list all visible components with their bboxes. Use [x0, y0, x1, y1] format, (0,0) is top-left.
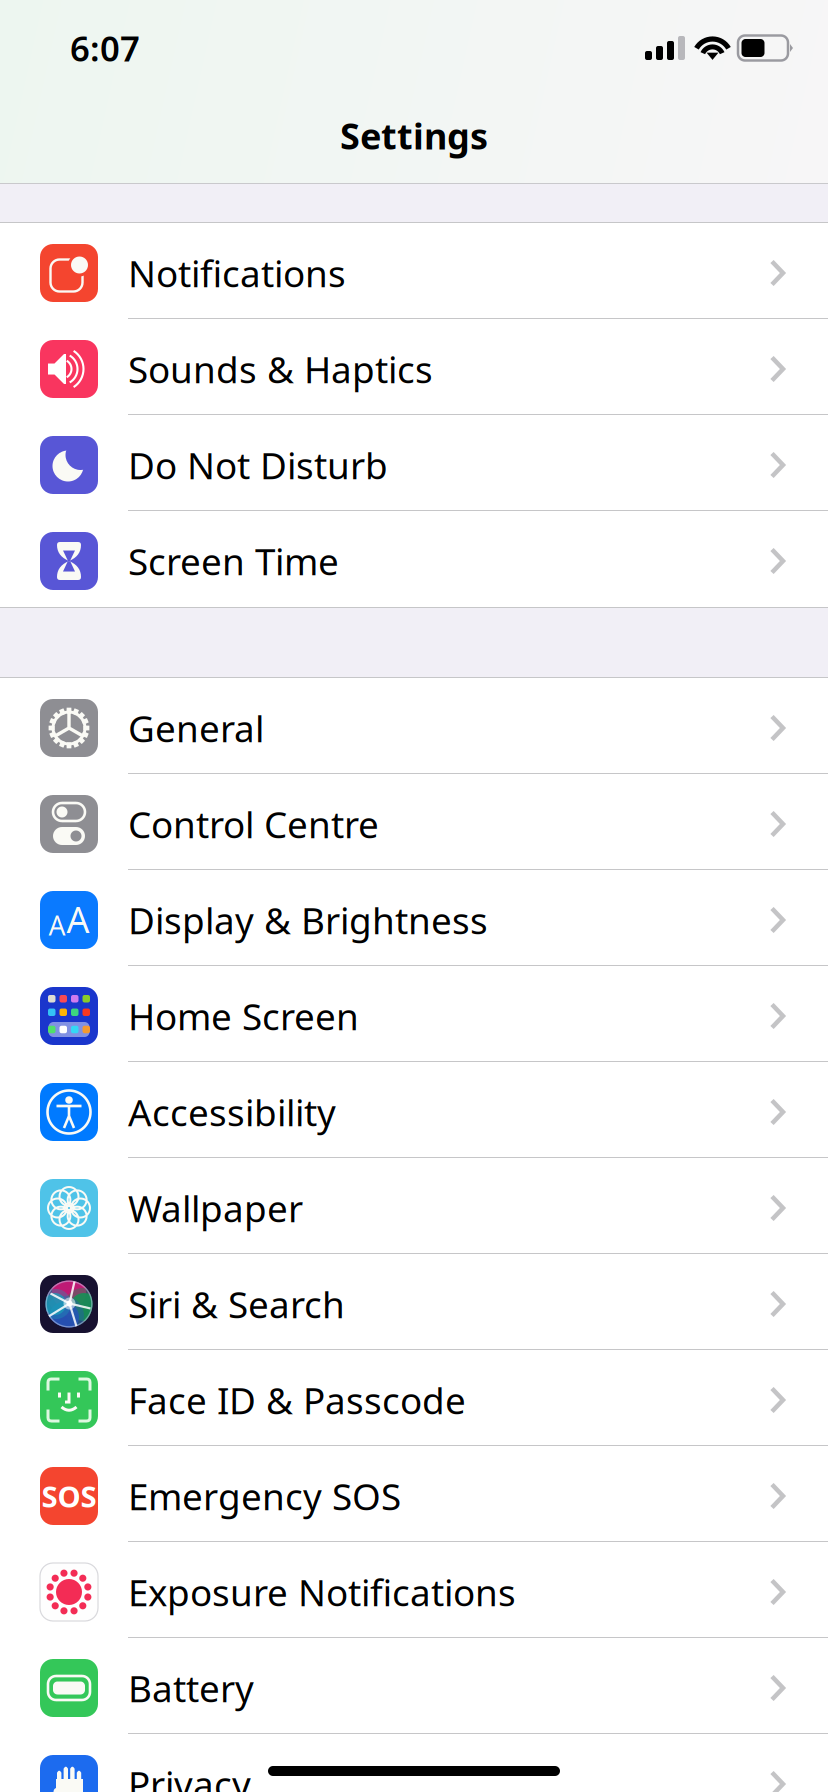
button[interactable]: General [0, 678, 828, 774]
staticText: Privacy [128, 1759, 251, 1792]
staticText: Emergency SOS [128, 1471, 401, 1521]
button[interactable]: Sounds & Haptics [0, 319, 828, 415]
button[interactable]: Battery [0, 1638, 828, 1734]
staticText: Accessibility [128, 1087, 336, 1137]
staticText: Sounds & Haptics [128, 344, 433, 394]
staticText: Display & Brightness [128, 895, 488, 945]
button[interactable]: Exposure Notifications [0, 1542, 828, 1638]
button[interactable]: Accessibility [0, 1062, 828, 1158]
button[interactable]: Face ID & Passcode [0, 1350, 828, 1446]
staticText: Siri & Search [128, 1279, 345, 1329]
staticText: Home Screen [128, 991, 359, 1041]
staticText: A [48, 907, 65, 943]
button[interactable]: Screen Time [0, 511, 828, 607]
staticText: A [66, 895, 89, 943]
button[interactable]: SOS [0, 1446, 828, 1542]
staticText: Control Centre [128, 799, 379, 849]
staticText: Do Not Disturb [128, 440, 388, 490]
staticText: Notifications [128, 248, 346, 298]
staticText: Exposure Notifications [128, 1567, 516, 1617]
button[interactable]: Home Screen [0, 966, 828, 1062]
button[interactable]: A [0, 870, 828, 966]
button[interactable]: Wallpaper [0, 1158, 828, 1254]
button[interactable]: Siri & Search [0, 1254, 828, 1350]
staticText: Screen Time [128, 536, 339, 586]
staticText: Face ID & Passcode [128, 1375, 466, 1425]
staticText: SOS [41, 1476, 96, 1515]
button[interactable]: Notifications [0, 223, 828, 319]
button[interactable]: Control Centre [0, 774, 828, 870]
staticText: Settings [340, 112, 488, 159]
staticText: 6:07 [70, 25, 140, 71]
staticText: Wallpaper [128, 1183, 303, 1233]
button[interactable]: Do Not Disturb [0, 415, 828, 511]
staticText: Battery [128, 1663, 254, 1713]
button[interactable]: Privacy [0, 1734, 828, 1792]
staticText: General [128, 703, 264, 753]
